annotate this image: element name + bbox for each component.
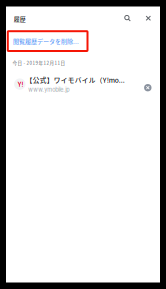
button[interactable]: 検索 — [116, 7, 138, 29]
staticText: 今日 - 2019年12月11日 — [12, 59, 65, 66]
staticText: 【公式】ワイモバイル（Y!mo... — [26, 75, 125, 85]
staticText: Y! — [17, 81, 23, 88]
button[interactable]: 削除 — [140, 80, 156, 96]
staticText: 履歴 — [14, 15, 26, 23]
staticText: 閲覧履歴データを削除... — [13, 37, 79, 46]
button[interactable]: 閉じる — [137, 7, 159, 29]
button[interactable]: Y! — [6, 72, 160, 96]
button[interactable]: 閲覧履歴データを削除... — [8, 31, 87, 51]
staticText: www.ymobile.jp — [28, 86, 69, 93]
